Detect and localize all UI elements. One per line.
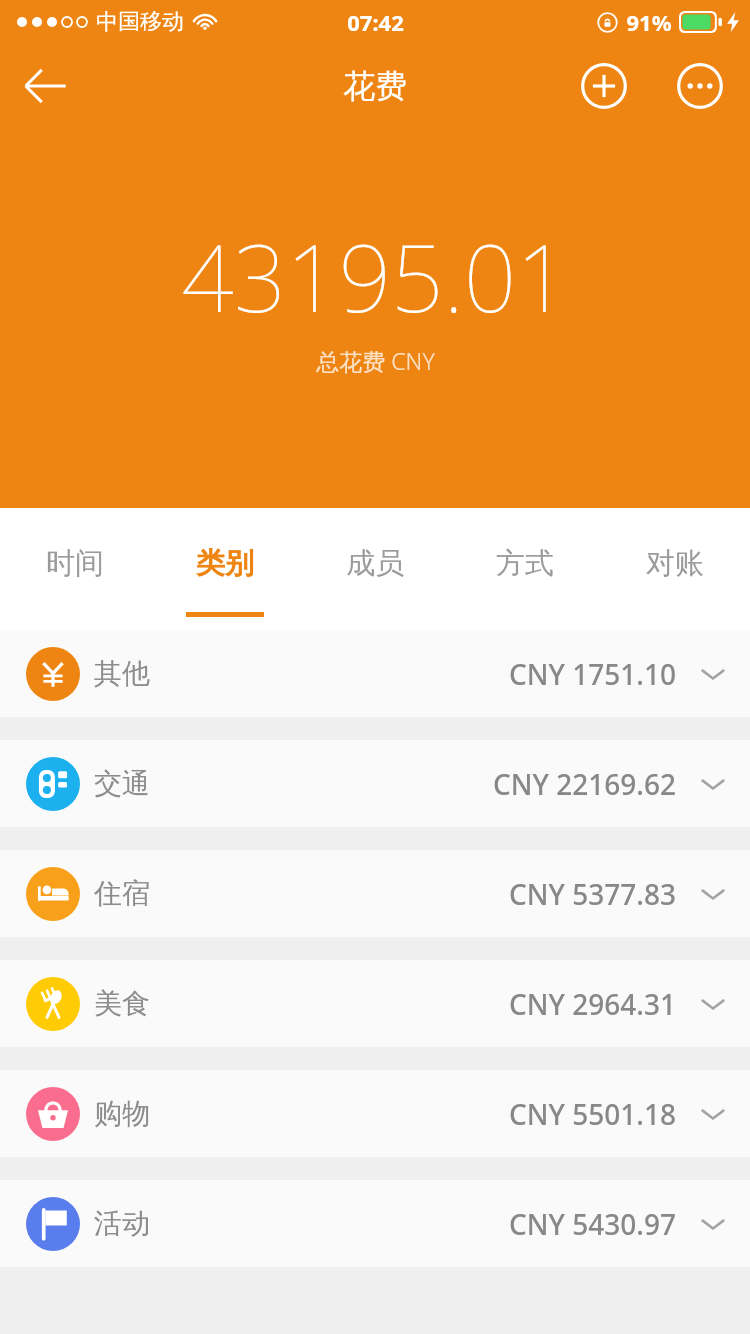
staticText: 对账 (646, 545, 704, 582)
staticText: 活动 (94, 1206, 150, 1241)
staticText: 43195.01 (181, 214, 569, 339)
staticText: 91% (626, 7, 672, 37)
staticText: CNY 5501.18 (509, 1095, 676, 1133)
button[interactable]: 时间 (0, 508, 150, 630)
button[interactable]: More options (672, 58, 728, 114)
staticText: CNY 2964.31 (509, 985, 676, 1023)
button[interactable]: 成员 (300, 508, 450, 630)
button[interactable]: Add (576, 58, 632, 114)
staticText: 总花费 CNY (316, 345, 435, 376)
button[interactable]: 美食 (0, 960, 750, 1047)
staticText: 交通 (94, 766, 150, 801)
button[interactable]: 类别 (150, 508, 300, 630)
button[interactable]: 其他 (0, 630, 750, 717)
staticText: CNY 5377.83 (509, 875, 676, 913)
staticText: 时间 (46, 545, 104, 582)
staticText: 美食 (94, 986, 150, 1021)
staticText: 其他 (94, 656, 150, 691)
staticText: 07:42 (347, 7, 404, 37)
button[interactable]: Back (10, 51, 80, 121)
button[interactable]: 住宿 (0, 850, 750, 937)
button[interactable]: 购物 (0, 1070, 750, 1157)
staticText: 中国移动 (96, 8, 184, 36)
staticText: CNY 5430.97 (509, 1205, 676, 1243)
button[interactable]: 活动 (0, 1180, 750, 1267)
button[interactable]: 交通 (0, 740, 750, 827)
staticText: 类别 (196, 545, 254, 582)
staticText: 花费 (343, 66, 407, 106)
staticText: 方式 (496, 545, 554, 582)
staticText: CNY 1751.10 (509, 655, 676, 693)
button[interactable]: 对账 (600, 508, 750, 630)
staticText: CNY 22169.62 (493, 765, 676, 803)
staticText: 购物 (94, 1096, 150, 1131)
button[interactable]: 方式 (450, 508, 600, 630)
staticText: 成员 (346, 545, 404, 582)
staticText: 住宿 (94, 876, 150, 911)
